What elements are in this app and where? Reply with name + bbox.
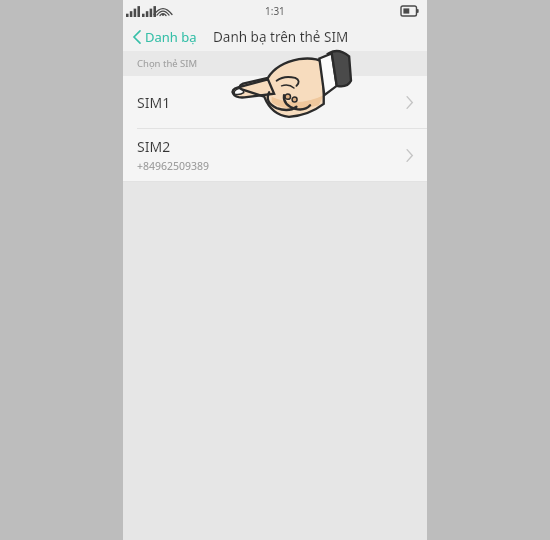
staticText: 1:31 xyxy=(265,4,285,18)
staticText: SIM1 xyxy=(137,93,171,112)
button[interactable]: SIM1 xyxy=(123,76,427,128)
other: Open xyxy=(406,149,413,162)
staticText: Danh bạ trên thẻ SIM xyxy=(213,28,349,46)
staticText: Chọn thẻ SIM xyxy=(137,57,198,70)
staticText: +84962509389 xyxy=(137,159,210,173)
staticText: Danh bạ xyxy=(145,28,197,46)
other: Open xyxy=(406,96,413,109)
button[interactable]: SIM2 xyxy=(123,129,427,181)
button[interactable]: Danh bạ xyxy=(123,25,203,49)
staticText: SIM2 xyxy=(137,137,171,156)
